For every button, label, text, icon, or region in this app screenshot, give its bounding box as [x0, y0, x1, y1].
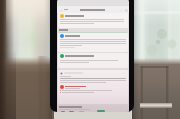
button[interactable]: Search — [123, 7, 129, 13]
button[interactable]: Dismiss — [58, 70, 128, 104]
button[interactable]: Photos — [69, 111, 74, 112]
button[interactable]: Calendar — [61, 111, 65, 112]
button[interactable]: Notes — [79, 111, 84, 112]
button[interactable] — [58, 33, 128, 52]
button[interactable]: Back — [58, 7, 64, 13]
button[interactable] — [58, 53, 128, 68]
button[interactable]: Assistant — [97, 110, 105, 112]
button[interactable] — [58, 13, 128, 28]
